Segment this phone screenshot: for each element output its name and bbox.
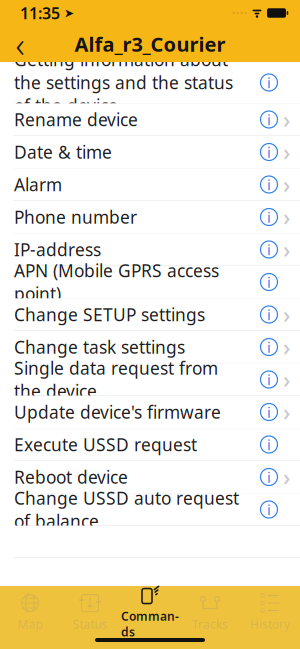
staticText: Change SETUP settings	[14, 303, 205, 326]
button[interactable]: Update device's firmware	[0, 396, 300, 428]
staticText: Alfa_r3_Courier	[74, 31, 225, 57]
staticText: Reboot device	[14, 465, 128, 488]
staticText: ›	[283, 364, 290, 394]
staticText: i	[267, 272, 271, 292]
button[interactable]: Rename device	[0, 103, 300, 136]
button[interactable]: Change SETUP settings	[0, 298, 300, 331]
staticText: ›	[283, 462, 290, 492]
button[interactable]: Alarm	[0, 168, 300, 201]
staticText: i	[267, 110, 271, 129]
staticText: ➤	[60, 6, 74, 20]
staticText: ›	[283, 104, 290, 134]
staticText: i	[267, 207, 271, 227]
staticText: ›	[283, 234, 290, 264]
button[interactable]: Change task settings	[0, 331, 300, 363]
staticText: ›	[283, 137, 290, 167]
staticText: History	[250, 616, 290, 632]
button[interactable]: IP-address	[0, 233, 300, 266]
button[interactable]: Single data request from the device	[0, 363, 300, 396]
staticText: Single data request from the device	[14, 356, 218, 402]
staticText: Commands	[121, 608, 179, 640]
staticText: i	[267, 467, 271, 487]
button[interactable]: History	[240, 587, 300, 632]
button[interactable]: Reboot device	[0, 461, 300, 493]
staticText: Rename device	[14, 108, 138, 131]
staticText: IP-address	[14, 238, 101, 261]
staticText: Tracks	[192, 616, 228, 632]
button[interactable]: Status	[60, 587, 120, 632]
staticText: ›	[283, 299, 290, 329]
staticText: ›	[283, 397, 290, 427]
button[interactable]: Map	[0, 587, 60, 632]
staticText: i	[267, 435, 271, 454]
button[interactable]: Back	[0, 26, 40, 62]
staticText: Execute USSD request	[14, 433, 197, 456]
staticText: ›	[283, 169, 290, 199]
staticText: ‹	[15, 21, 24, 67]
staticText: i	[267, 73, 271, 92]
staticText: i	[267, 370, 271, 389]
staticText: APN (Mobile GPRS access point)	[14, 259, 219, 305]
staticText: Map	[17, 616, 42, 632]
staticText: i	[267, 240, 271, 259]
staticText: Date & time	[14, 140, 112, 163]
staticText: 11:35	[20, 2, 60, 24]
staticText: i	[267, 305, 271, 324]
staticText: Alarm	[14, 173, 62, 196]
button[interactable]: Tracks	[180, 587, 240, 632]
button[interactable]: Execute USSD request	[0, 428, 300, 461]
staticText: i	[267, 175, 271, 194]
staticText: Change USSD auto request of balance	[14, 486, 239, 532]
staticText: Change task settings	[14, 335, 185, 358]
staticText: Status	[72, 616, 107, 632]
staticText: Getting information about the settings a…	[14, 48, 233, 117]
button[interactable]: Getting information about the settings a…	[0, 62, 300, 103]
staticText: Update device's firmware	[14, 400, 221, 423]
staticText: ›	[283, 202, 290, 232]
staticText: i	[267, 402, 271, 422]
button[interactable]: Phone number	[0, 201, 300, 233]
button[interactable]: Date & time	[0, 136, 300, 168]
button[interactable]: Commands	[120, 579, 180, 640]
staticText: Phone number	[14, 205, 137, 228]
button[interactable]: Change USSD auto request of balance	[0, 493, 300, 526]
staticText: i	[267, 500, 271, 519]
staticText: ›	[283, 332, 290, 362]
staticText: i	[267, 142, 271, 162]
button[interactable]: APN (Mobile GPRS access point)	[0, 266, 300, 298]
staticText: i	[267, 337, 271, 357]
